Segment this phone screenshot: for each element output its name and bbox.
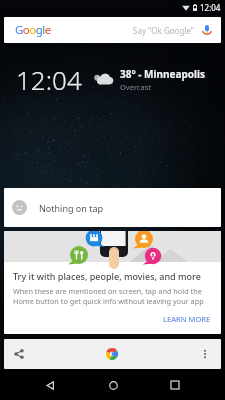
button[interactable]: Share bbox=[9, 344, 29, 364]
staticText: When these are mentioned on screen, tap … bbox=[13, 286, 204, 306]
button[interactable]: More options bbox=[195, 344, 215, 364]
button[interactable]: Voice search bbox=[200, 23, 214, 37]
staticText: Nothing on tap bbox=[39, 202, 104, 214]
staticText: LEARN MORE bbox=[163, 314, 211, 324]
staticText: Overcast bbox=[120, 82, 151, 92]
staticText: Try it with places, people, movies, and … bbox=[13, 270, 201, 282]
button[interactable]: LEARN MORE bbox=[159, 310, 215, 328]
button[interactable]: Home bbox=[100, 372, 126, 398]
button[interactable]: Back bbox=[37, 372, 63, 398]
staticText: 12:04 bbox=[200, 2, 221, 13]
staticText: Say "Ok Google" bbox=[133, 25, 195, 36]
button[interactable]: Recents bbox=[162, 372, 188, 398]
staticText: 12:04 bbox=[16, 62, 82, 97]
staticText: 38° - Minneapolis bbox=[120, 67, 206, 81]
button[interactable]: Google bbox=[4, 17, 221, 43]
button[interactable]: Nothing on tap bbox=[4, 188, 221, 227]
staticText: Google bbox=[15, 22, 51, 38]
button[interactable]: Google bbox=[101, 343, 123, 365]
